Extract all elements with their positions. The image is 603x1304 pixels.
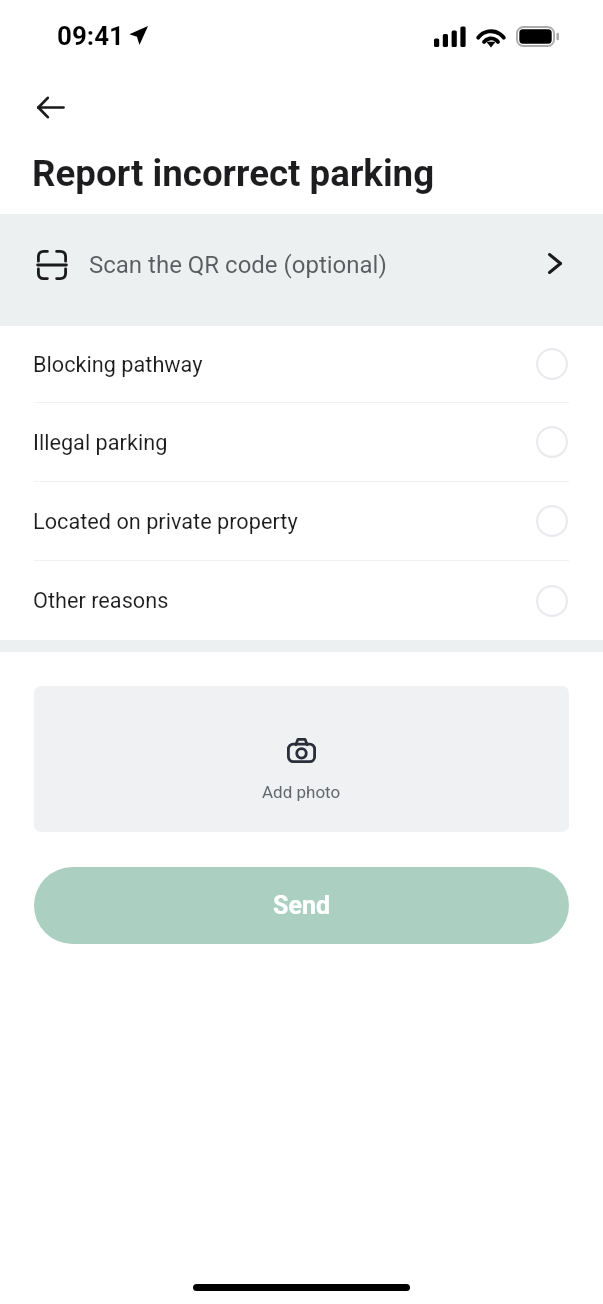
staticText: Scan the QR code (optional) <box>89 251 387 279</box>
staticText: Report incorrect parking <box>32 152 435 195</box>
staticText: Illegal parking <box>33 430 168 455</box>
button[interactable]: Scan the QR code (optional) <box>0 214 603 326</box>
button[interactable]: Other reasons <box>0 561 603 640</box>
button[interactable]: Send <box>34 867 569 944</box>
button[interactable]: Back <box>27 84 73 130</box>
staticText: 09:41 <box>57 21 124 51</box>
staticText: Located on private property <box>33 509 298 534</box>
staticText: Add photo <box>262 782 341 802</box>
button[interactable]: Illegal parking <box>0 403 603 481</box>
button[interactable]: Blocking pathway <box>0 326 603 402</box>
staticText: Blocking pathway <box>33 352 203 377</box>
button[interactable]: Located on private property <box>0 482 603 560</box>
staticText: Send <box>273 891 330 920</box>
staticText: Other reasons <box>33 588 169 613</box>
button[interactable]: Add photo <box>34 686 569 832</box>
